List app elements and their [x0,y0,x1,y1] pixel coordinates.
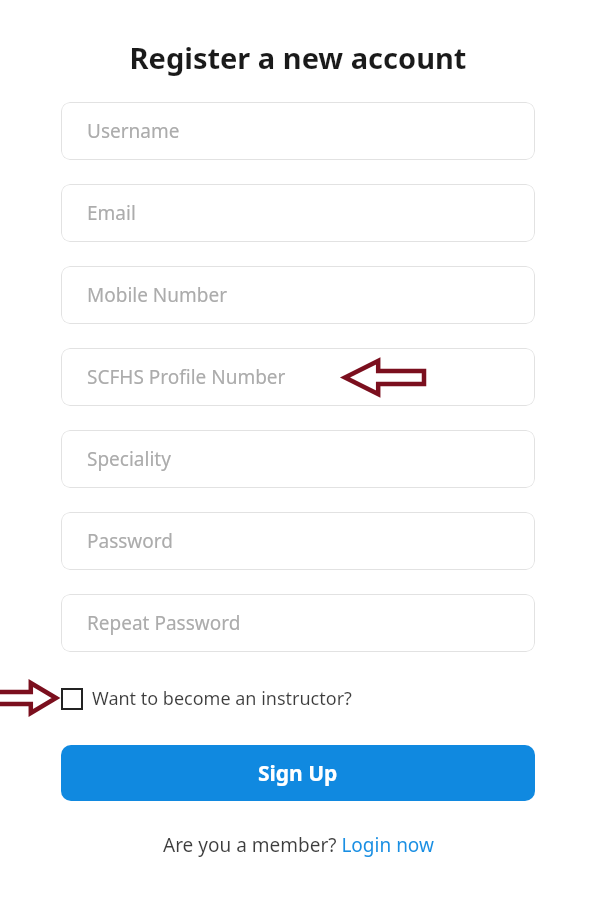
staticText: Sign Up [258,759,338,788]
button[interactable]: SCFHS Profile Number [61,348,535,406]
button[interactable]: Are you a member? Login now [163,832,434,858]
button[interactable]: Speciality [61,430,535,488]
staticText: Password [87,528,173,554]
button[interactable]: Sign Up [61,745,535,801]
staticText: Speciality [87,446,171,472]
staticText: Want to become an instructor? [92,686,352,711]
staticText: Repeat Password [87,610,241,636]
staticText: Register a new account [0,38,596,77]
button[interactable]: Repeat Password [61,594,535,652]
staticText: Are you a member? Login now [163,832,434,858]
staticText: SCFHS Profile Number [87,364,286,390]
button[interactable]: Email [61,184,535,242]
staticText: Mobile Number [87,282,228,308]
staticText: Username [87,118,180,144]
button[interactable]: Mobile Number [61,266,535,324]
staticText: Email [87,200,136,226]
button[interactable]: Username [61,102,535,160]
button[interactable]: Want to become an instructor? [61,686,352,711]
button[interactable]: Password [61,512,535,570]
